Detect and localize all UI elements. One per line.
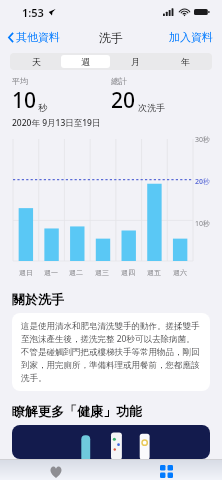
button[interactable]: 年 [160, 55, 210, 68]
button[interactable]: 這是使用清水和肥皂清洗雙手的動作。搓揉雙手至泡沫產生後，搓洗完整 20秒可以去除… [12, 313, 210, 391]
button[interactable]: 週 [61, 55, 110, 68]
button[interactable] [12, 425, 210, 459]
button[interactable]: 摘要 [0, 460, 111, 480]
other: 摘要 [49, 465, 63, 479]
staticText: 週三 [95, 268, 109, 277]
staticText: 週六 [173, 268, 187, 277]
staticText: 週一 [44, 268, 58, 277]
staticText: 20 [111, 86, 136, 115]
staticText: 10 [12, 86, 37, 115]
staticText: 平均 [12, 76, 28, 86]
staticText: 洗手 [99, 30, 123, 45]
staticText: 週 [81, 56, 90, 67]
staticText: 30秒 [195, 135, 211, 145]
staticText: 總計 [111, 76, 127, 86]
button[interactable]: 月 [110, 55, 160, 68]
staticText: 次洗手 [138, 102, 165, 113]
staticText: 瞭解更多「健康」功能 [12, 403, 142, 419]
staticText: 週二 [69, 268, 83, 277]
button[interactable]: 加入資料 [160, 27, 222, 47]
staticText: 這是使用清水和肥皂清洗雙手的動作。搓揉雙手至泡沫產生後，搓洗完整 20秒可以去除… [21, 321, 201, 383]
staticText: 1:53 [22, 5, 44, 20]
staticText: 其他資料 [16, 30, 60, 44]
staticText: 月 [131, 56, 140, 67]
staticText: 週五 [147, 268, 161, 277]
staticText: 20秒 [195, 177, 211, 187]
staticText: 天 [32, 56, 41, 67]
staticText: 年 [181, 56, 190, 67]
staticText: 秒 [38, 102, 47, 113]
button[interactable]: 天 [12, 55, 61, 68]
staticText: 10秒 [195, 219, 211, 229]
staticText: 關於洗手 [12, 291, 64, 307]
staticText: 2020年 9月13日至19日 [12, 117, 101, 129]
other: 瀏覽 [160, 465, 173, 478]
button[interactable]: 瀏覽 [111, 460, 222, 480]
button[interactable]: 其他資料 [0, 27, 66, 47]
staticText: 週四 [121, 268, 135, 277]
staticText: 週日 [19, 268, 33, 277]
staticText: 加入資料 [169, 30, 213, 44]
